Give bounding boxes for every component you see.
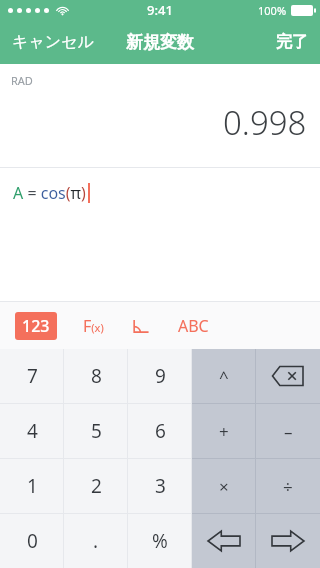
button[interactable]: 123 — [15, 312, 57, 340]
staticText: F(x) — [83, 315, 104, 337]
button[interactable]: . — [64, 514, 128, 568]
staticText: 1 — [27, 473, 38, 499]
button[interactable]: 9 — [128, 349, 192, 403]
button[interactable]: ÷ — [256, 459, 320, 513]
button[interactable]: 2 — [64, 459, 128, 513]
staticText: キャンセル — [12, 32, 94, 52]
staticText: RAD — [11, 73, 33, 88]
staticText: 0.998 — [223, 100, 307, 145]
button[interactable]: 1 — [0, 459, 64, 513]
button[interactable]: % — [128, 514, 192, 568]
staticText: 9 — [155, 363, 166, 389]
staticText: 2 — [91, 473, 102, 499]
button[interactable]: キャンセル — [0, 20, 106, 64]
button[interactable]: – — [256, 404, 320, 458]
button[interactable]: ABC — [172, 310, 215, 342]
button[interactable]: + — [192, 404, 256, 458]
button[interactable]: 0 — [0, 514, 64, 568]
button[interactable]: 4 — [0, 404, 64, 458]
staticText: % — [152, 528, 168, 554]
staticText: ^ — [219, 365, 229, 388]
staticText: ABC — [178, 315, 209, 337]
staticText: 6 — [155, 418, 166, 444]
staticText: 123 — [22, 315, 50, 337]
button[interactable]: 8 — [64, 349, 128, 403]
button[interactable]: Angle functions — [126, 314, 156, 338]
button[interactable]: 7 — [0, 349, 64, 403]
staticText: 3 — [155, 473, 166, 499]
staticText: 4 — [27, 418, 38, 444]
button[interactable]: Move cursor right — [256, 514, 320, 568]
staticText: A = cos(π) — [13, 182, 86, 204]
button[interactable]: Move cursor left — [192, 514, 256, 568]
staticText: 8 — [91, 363, 102, 389]
staticText: × — [219, 475, 229, 498]
staticText: 新規変数 — [126, 32, 194, 53]
staticText: ÷ — [283, 475, 293, 498]
staticText: . — [93, 528, 99, 554]
staticText: 100% — [258, 3, 287, 18]
button[interactable]: Backspace — [256, 349, 320, 403]
staticText: + — [219, 420, 229, 443]
button[interactable]: 5 — [64, 404, 128, 458]
staticText: – — [284, 420, 293, 443]
button[interactable]: 6 — [128, 404, 192, 458]
button[interactable]: 3 — [128, 459, 192, 513]
button[interactable]: × — [192, 459, 256, 513]
button[interactable]: F(x) — [77, 310, 110, 342]
button[interactable]: ^ — [192, 349, 256, 403]
staticText: 9:41 — [147, 1, 173, 19]
staticText: 5 — [91, 418, 102, 444]
button[interactable]: 完了 — [264, 20, 320, 64]
staticText: 0 — [27, 528, 38, 554]
staticText: 7 — [27, 363, 38, 389]
staticText: 完了 — [276, 32, 308, 52]
